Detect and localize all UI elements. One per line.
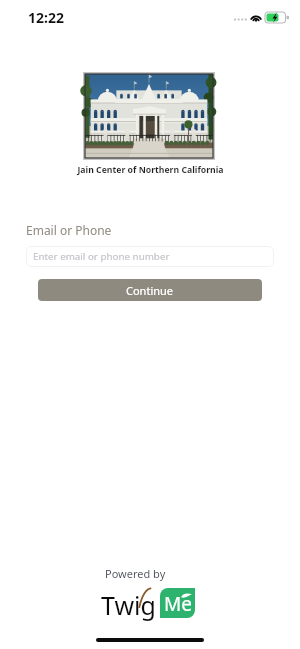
other: Wi-Fi (250, 13, 262, 22)
staticText: Enter email or phone number (33, 250, 170, 263)
staticText: Jain Center of Northern California (77, 164, 224, 176)
staticText: Twig (101, 588, 156, 622)
other: Battery charging (265, 12, 289, 23)
staticText: Powered by (105, 566, 166, 581)
staticText: Continue (126, 283, 174, 298)
button[interactable]: Enter email or phone number (26, 246, 274, 267)
button[interactable]: Continue (38, 279, 262, 301)
staticText: Me (164, 591, 192, 617)
staticText: Email or Phone (26, 222, 112, 238)
staticText: 12:22 (28, 8, 64, 27)
